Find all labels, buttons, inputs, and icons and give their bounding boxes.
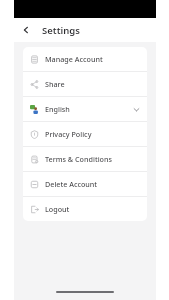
button[interactable]: Privacy Policy bbox=[23, 122, 147, 146]
button[interactable]: Logout bbox=[23, 197, 147, 221]
button[interactable]: Terms & Conditions bbox=[23, 147, 147, 171]
staticText: Terms & Conditions bbox=[45, 154, 112, 164]
staticText: Share bbox=[45, 79, 65, 89]
button[interactable]: Manage Account bbox=[23, 47, 147, 71]
staticText: Privacy Policy bbox=[45, 129, 92, 139]
button[interactable]: Back bbox=[18, 22, 34, 38]
staticText: Manage Account bbox=[45, 54, 103, 64]
button[interactable]: English bbox=[23, 97, 147, 121]
button[interactable]: Delete Account bbox=[23, 172, 147, 196]
staticText: English bbox=[45, 104, 70, 114]
staticText: Logout bbox=[45, 204, 70, 214]
staticText: Settings bbox=[42, 24, 80, 37]
staticText: Delete Account bbox=[45, 179, 98, 189]
button[interactable]: Share bbox=[23, 72, 147, 96]
